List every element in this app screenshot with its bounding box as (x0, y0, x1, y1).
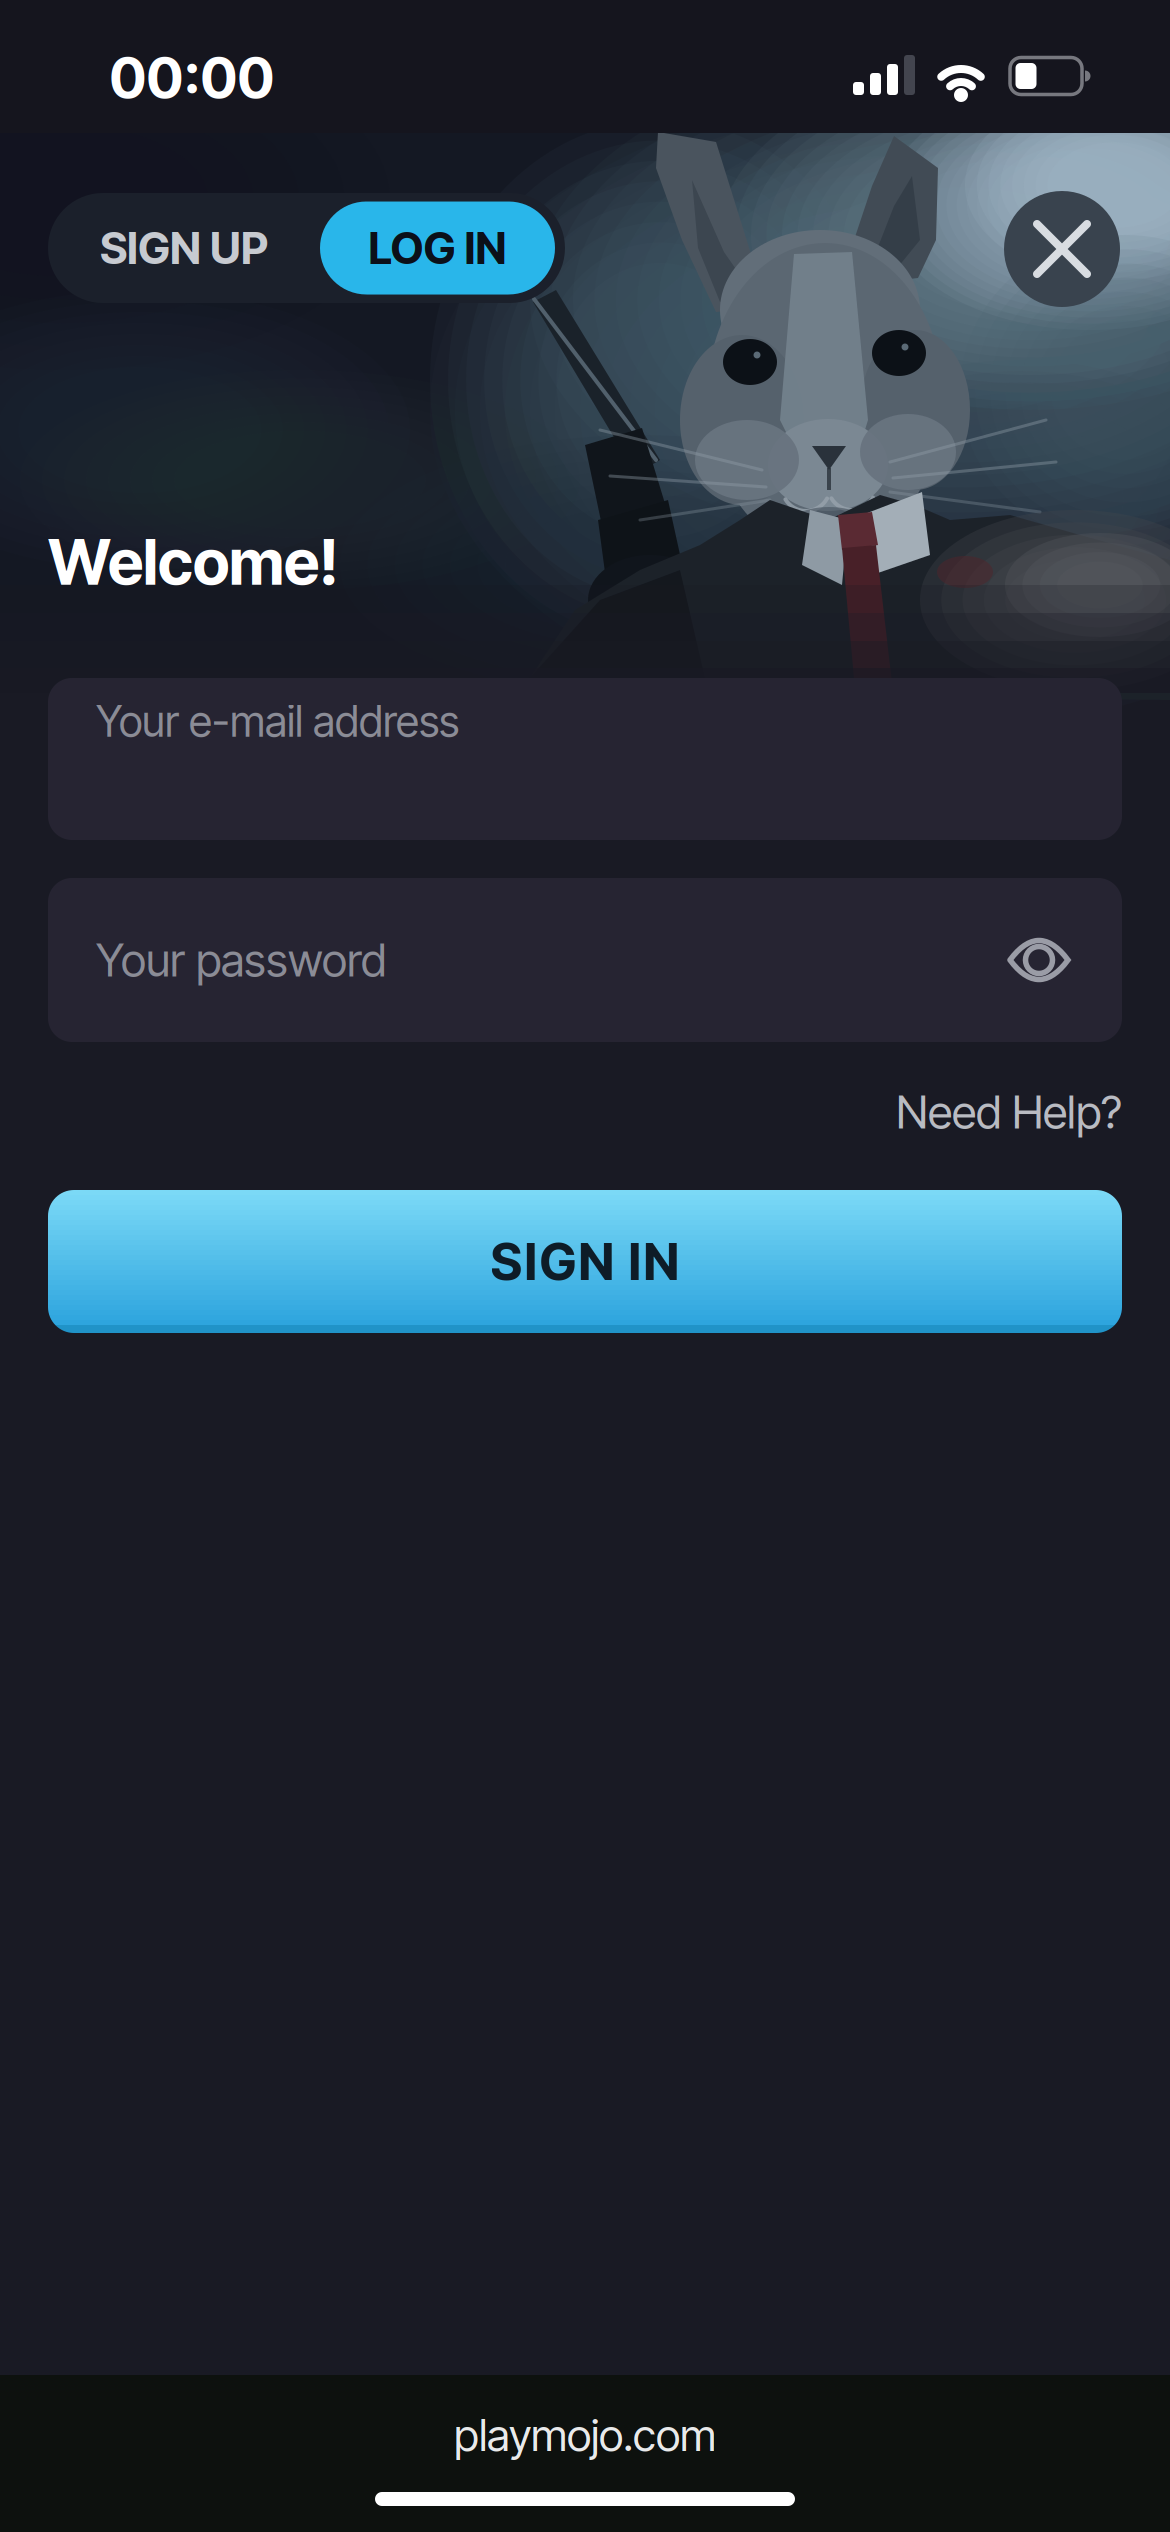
staticText: 00:00 (109, 45, 274, 111)
button[interactable]: SIGN IN (48, 1190, 1122, 1333)
button[interactable] (1004, 191, 1120, 307)
staticText: Need Help? (896, 1085, 1122, 1139)
button[interactable]: Your e-mail address (48, 678, 1122, 840)
staticText: SIGN UP (100, 222, 268, 274)
staticText: LOG IN (368, 222, 506, 274)
staticText: Your e-mail address (96, 696, 459, 746)
staticText: Your password (96, 933, 386, 987)
button[interactable]: SIGN UP (48, 193, 320, 303)
staticText: playmojo.com (454, 2409, 716, 2461)
button[interactable]: Your password (48, 878, 1122, 1042)
button[interactable]: LOG IN (320, 201, 555, 294)
staticText: SIGN IN (490, 1232, 679, 1291)
button[interactable]: Need Help? (896, 1085, 1122, 1139)
staticText: Welcome! (48, 525, 339, 599)
